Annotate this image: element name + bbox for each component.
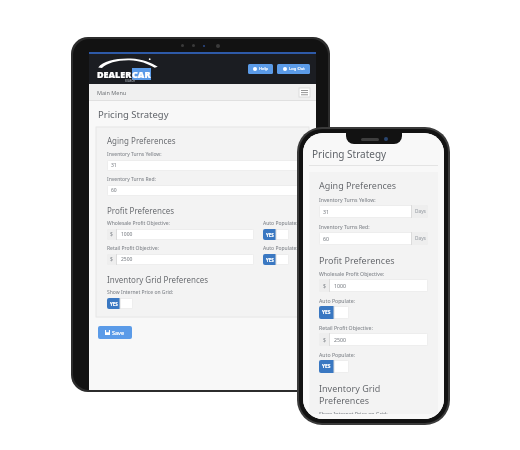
staticText: Show Internet Price on Grid: [319, 410, 388, 414]
staticText: Days [415, 235, 426, 242]
staticText: Main Menu [97, 89, 127, 96]
button[interactable]: 60 [107, 185, 298, 196]
staticText: Log Out [289, 66, 305, 72]
button[interactable]: YES [263, 229, 289, 240]
button[interactable]: Menu [299, 88, 310, 97]
button[interactable]: $ [107, 254, 254, 265]
button[interactable]: YES [319, 360, 349, 373]
staticText: Retail Profit Objective: [107, 245, 159, 252]
staticText: Retail Profit Objective: [319, 324, 373, 331]
staticText: $ [323, 336, 326, 343]
staticText: YES [266, 257, 274, 263]
staticText: 31 [323, 208, 329, 215]
staticText: Show Internet Price on Grid: [107, 289, 174, 296]
staticText: YES [322, 363, 331, 370]
button[interactable]: 31 [107, 160, 298, 171]
staticText: YES [322, 309, 331, 316]
staticText: DEALER [97, 68, 132, 80]
staticText: CAR [132, 68, 151, 80]
staticText: Auto Populate: [319, 351, 355, 358]
staticText: 1000 [121, 231, 133, 238]
staticText: 2500 [121, 256, 133, 263]
button[interactable]: YES [107, 298, 133, 309]
staticText: Aging Preferences [107, 135, 176, 146]
button[interactable]: Main Menu [89, 84, 316, 100]
staticText: Save [112, 329, 125, 336]
button[interactable]: $ [319, 279, 428, 292]
staticText: 2500 [334, 336, 346, 343]
staticText: $ [323, 282, 326, 289]
staticText: Inventory Turns Red: [319, 223, 370, 230]
staticText: Inventory Turns Red: [107, 176, 156, 183]
button[interactable]: YES [319, 306, 349, 319]
button[interactable]: Log Out [277, 64, 310, 74]
button[interactable]: $ [107, 229, 254, 240]
staticText: $ [110, 231, 113, 238]
staticText: Auto Populate: [319, 297, 355, 304]
staticText: YES [110, 301, 118, 307]
staticText: Profit Preferences [107, 205, 175, 216]
staticText: Inventory Grid Preferences [319, 382, 428, 406]
button[interactable]: $ [319, 333, 428, 346]
staticText: SEARCH [125, 79, 136, 83]
staticText: Auto Populate: [263, 245, 298, 252]
button[interactable]: Save [98, 326, 132, 339]
staticText: 1000 [334, 282, 346, 289]
staticText: 60 [323, 235, 329, 242]
staticText: Inventory Turns Yellow: [319, 196, 376, 203]
staticText: Help [259, 66, 269, 72]
staticText: 31 [111, 162, 117, 169]
staticText: Wholesale Profit Objective: [107, 220, 170, 227]
staticText: Wholesale Profit Objective: [319, 270, 385, 277]
button[interactable]: 60 [319, 232, 428, 245]
staticText: Inventory Turns Yellow: [107, 151, 162, 158]
staticText: Pricing Strategy [98, 108, 169, 121]
button[interactable]: Help [248, 64, 273, 74]
button[interactable]: 31 [319, 205, 428, 218]
staticText: Profit Preferences [319, 254, 395, 266]
button[interactable]: YES [263, 254, 289, 265]
staticText: YES [266, 232, 274, 238]
staticText: Aging Preferences [319, 179, 397, 191]
staticText: Auto Populate: [263, 220, 298, 227]
staticText: Pricing Strategy [312, 147, 387, 161]
staticText: Days [415, 208, 426, 215]
staticText: 60 [111, 187, 117, 194]
staticText: $ [110, 256, 113, 263]
staticText: Inventory Grid Preferences [107, 274, 209, 285]
